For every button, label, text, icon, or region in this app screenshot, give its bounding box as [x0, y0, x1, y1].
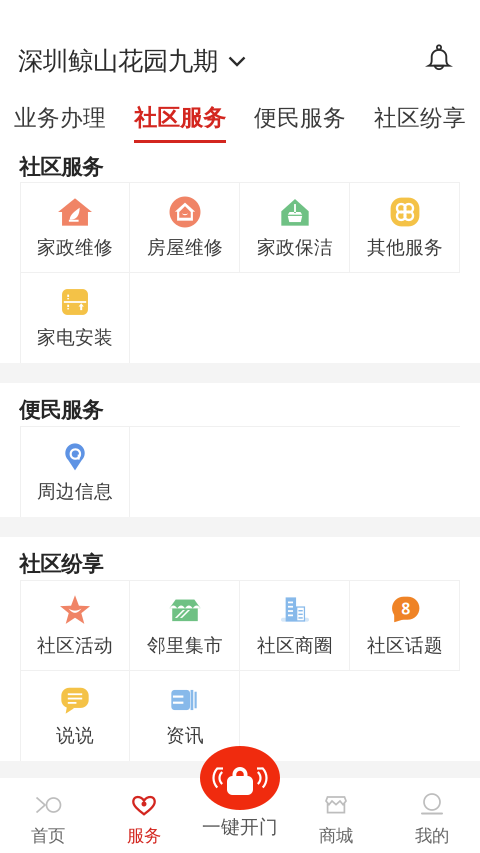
- button[interactable]: 其他服务: [350, 183, 460, 273]
- staticText: 一键开门: [202, 815, 278, 838]
- button[interactable]: 一键开门: [192, 816, 288, 838]
- staticText: 社区服务: [19, 154, 103, 180]
- button[interactable]: 房屋维修: [130, 183, 240, 273]
- button[interactable]: 社区活动: [20, 581, 130, 671]
- button[interactable]: 家电安装: [20, 273, 130, 363]
- button[interactable]: 资讯: [130, 671, 240, 761]
- staticText: 深圳鲸山花园九期: [18, 45, 218, 76]
- button[interactable]: 社区服务: [120, 93, 240, 145]
- staticText: 首页: [31, 825, 65, 846]
- button[interactable]: 家政保洁: [240, 183, 350, 273]
- button[interactable]: 说说: [20, 671, 130, 761]
- staticText: 社区活动: [37, 634, 113, 657]
- button[interactable]: 社区纷享: [360, 93, 480, 145]
- button[interactable]: 邻里集市: [130, 581, 240, 671]
- button[interactable]: 我的: [384, 778, 480, 853]
- button[interactable]: 首页: [0, 778, 96, 853]
- staticText: 社区纷享: [374, 104, 466, 132]
- button[interactable]: 深圳鲸山花园九期: [18, 43, 246, 79]
- staticText: 家政维修: [37, 236, 113, 259]
- staticText: 业务办理: [14, 104, 106, 132]
- staticText: 家电安装: [37, 326, 113, 349]
- button[interactable]: 服务: [96, 778, 192, 853]
- staticText: 资讯: [166, 724, 204, 747]
- button[interactable]: 8: [350, 581, 460, 671]
- button[interactable]: 业务办理: [0, 93, 120, 145]
- staticText: 服务: [127, 825, 161, 846]
- staticText: 周边信息: [37, 480, 113, 503]
- button[interactable]: 便民服务: [240, 93, 360, 145]
- staticText: 说说: [56, 724, 94, 747]
- staticText: 社区纷享: [19, 551, 103, 577]
- staticText: 其他服务: [367, 236, 443, 259]
- button[interactable]: Notifications: [422, 41, 456, 75]
- staticText: 家政保洁: [257, 236, 333, 259]
- button[interactable]: 社区商圈: [240, 581, 350, 671]
- button[interactable]: 周边信息: [20, 427, 130, 517]
- staticText: 房屋维修: [147, 236, 223, 259]
- staticText: 便民服务: [19, 397, 103, 423]
- staticText: 商城: [319, 825, 353, 846]
- staticText: 社区话题: [367, 634, 443, 657]
- staticText: 社区服务: [134, 104, 226, 132]
- staticText: 社区商圈: [257, 634, 333, 657]
- button[interactable]: 家政维修: [20, 183, 130, 273]
- staticText: 便民服务: [254, 104, 346, 132]
- button[interactable]: 商城: [288, 778, 384, 853]
- staticText: 我的: [415, 825, 449, 846]
- staticText: 邻里集市: [147, 634, 223, 657]
- button[interactable]: 一键开门: [200, 746, 280, 810]
- staticText: 8: [401, 598, 410, 619]
